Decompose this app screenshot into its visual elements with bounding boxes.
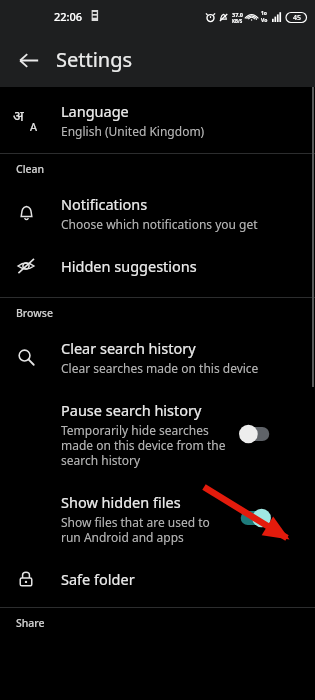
staticText: Share [16, 616, 45, 630]
staticText: Clear searches made on this device [61, 360, 259, 376]
button[interactable]: Safe folder [0, 555, 315, 603]
staticText: Show hidden files [61, 492, 181, 512]
staticText: 45 [293, 13, 302, 23]
staticText: Pause search history [61, 400, 202, 420]
staticText: Clean [16, 162, 45, 176]
staticText: अ [13, 106, 24, 125]
staticText: Settings [56, 46, 133, 73]
staticText: Safe folder [61, 569, 135, 589]
button[interactable]: Back [6, 38, 50, 82]
button[interactable]: Show hidden files [0, 481, 315, 555]
button[interactable]: Notifications [0, 184, 315, 242]
staticText: A [30, 119, 38, 134]
staticText: KB/S [232, 18, 243, 24]
staticText: Language [61, 101, 129, 121]
button[interactable]: Pause search history [0, 386, 315, 481]
staticText: English (United Kingdom) [61, 123, 205, 139]
staticText: Notifications [61, 194, 148, 214]
staticText: Vo [261, 17, 268, 24]
staticText: Clear search history [61, 338, 196, 358]
staticText: 1o [261, 10, 267, 17]
button[interactable]: अ [0, 87, 315, 153]
staticText: Show files that are used to run Android … [61, 514, 229, 545]
staticText: Hidden suggestions [61, 256, 197, 276]
staticText: 22:06 [54, 9, 83, 24]
staticText: Temporarily hide searches made on this d… [61, 422, 229, 468]
staticText: Browse [16, 306, 53, 320]
button[interactable]: Clear search history [0, 328, 315, 386]
staticText: 37.0 [232, 11, 243, 18]
staticText: Choose which notifications you get [61, 216, 258, 232]
button[interactable]: Hidden suggestions [0, 242, 315, 290]
